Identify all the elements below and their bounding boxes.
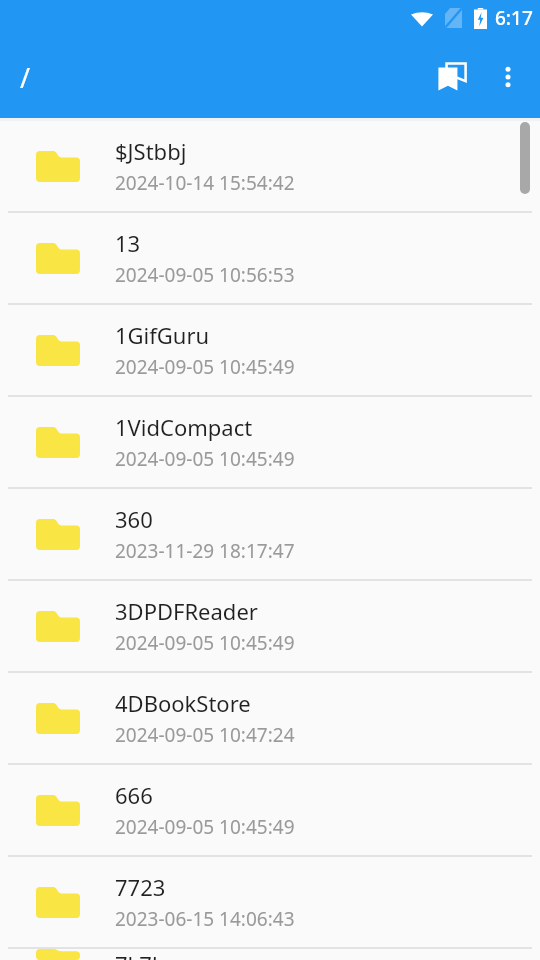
staticText: 666	[115, 780, 153, 810]
staticText: 2024-09-05 10:56:53	[115, 262, 295, 288]
staticText: $JStbbj	[115, 136, 187, 166]
staticText: 2024-10-14 15:54:42	[115, 170, 295, 196]
button[interactable]: Bookmarks	[424, 49, 480, 105]
button[interactable]: $JStbbj	[0, 121, 540, 211]
button[interactable]: 1VidCompact	[0, 397, 540, 487]
staticText: /	[20, 59, 31, 96]
button[interactable]: 13	[0, 213, 540, 303]
staticText: 2024-09-05 10:45:49	[115, 814, 295, 840]
staticText: 13	[115, 228, 141, 258]
button[interactable]: 360	[0, 489, 540, 579]
staticText: 360	[115, 504, 153, 534]
staticText: 2024-09-05 10:45:49	[115, 446, 295, 472]
staticText: 1VidCompact	[115, 412, 253, 442]
button[interactable]: More options	[480, 49, 536, 105]
button[interactable]: 1GifGuru	[0, 305, 540, 395]
staticText: 7723	[115, 872, 166, 902]
staticText: 7k7k	[115, 949, 164, 960]
staticText: 2023-11-29 18:17:47	[115, 538, 295, 564]
staticText: 2024-09-05 10:45:49	[115, 630, 295, 656]
button[interactable]: 4DBookStore	[0, 673, 540, 763]
button[interactable]: 7k7k	[0, 949, 540, 960]
staticText: 2024-09-05 10:47:24	[115, 722, 295, 748]
staticText: 2023-06-15 14:06:43	[115, 906, 295, 932]
staticText: 2024-09-05 10:45:49	[115, 354, 295, 380]
staticText: 6:17	[495, 5, 533, 31]
staticText: 4DBookStore	[115, 688, 251, 718]
button[interactable]: 3DPDFReader	[0, 581, 540, 671]
staticText: 3DPDFReader	[115, 596, 258, 626]
button[interactable]: 7723	[0, 857, 540, 947]
staticText: 1GifGuru	[115, 320, 210, 350]
button[interactable]: 666	[0, 765, 540, 855]
